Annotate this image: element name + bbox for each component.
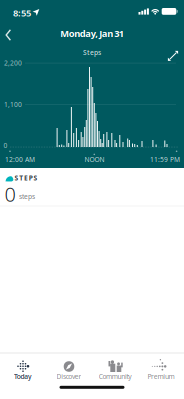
staticText: 0 bbox=[3, 141, 7, 150]
staticText: Today bbox=[14, 372, 32, 381]
staticText: 2,200 bbox=[4, 59, 22, 67]
staticText: Premium bbox=[147, 372, 175, 381]
staticText: 12:00 AM bbox=[5, 155, 35, 164]
staticText: Monday, Jan 31 bbox=[60, 27, 124, 40]
staticText: STEPS bbox=[14, 174, 38, 182]
staticText: Community bbox=[99, 372, 131, 381]
button[interactable]: Steps summary bbox=[0, 168, 184, 208]
staticText: Steps bbox=[83, 48, 101, 57]
button[interactable]: Community bbox=[92, 353, 138, 399]
staticText: 8:55 bbox=[13, 7, 31, 19]
button[interactable]: Today bbox=[0, 353, 46, 399]
staticText: NOON bbox=[84, 155, 104, 164]
staticText: Discover bbox=[56, 372, 81, 381]
button[interactable]: Premium bbox=[138, 353, 184, 399]
staticText: 11:59 PM bbox=[150, 155, 180, 164]
staticText: 1,100 bbox=[4, 100, 22, 109]
staticText: 0 bbox=[4, 181, 15, 207]
button[interactable]: Back bbox=[1, 26, 17, 44]
button[interactable]: Discover bbox=[46, 353, 92, 399]
button[interactable]: Expand chart bbox=[166, 49, 180, 62]
staticText: steps bbox=[19, 192, 35, 201]
